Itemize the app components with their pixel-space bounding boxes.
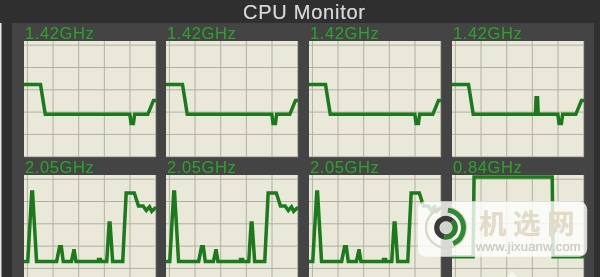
- staticText: 1.42GHz: [167, 24, 237, 42]
- button[interactable]: 2.05GHz: [24, 157, 156, 277]
- button[interactable]: 1.42GHz: [166, 23, 298, 157]
- staticText: 0.84GHz: [453, 158, 523, 176]
- staticText: 1.42GHz: [453, 24, 523, 42]
- staticText: 2.05GHz: [167, 158, 237, 176]
- staticText: 1.42GHz: [25, 24, 95, 42]
- staticText: 2.05GHz: [25, 158, 95, 176]
- button[interactable]: 1.42GHz: [452, 23, 584, 157]
- staticText: 机选网: [479, 202, 581, 242]
- button[interactable]: 0.84GHz: [452, 157, 584, 277]
- staticText: www.jixuanw.com: [476, 239, 581, 254]
- staticText: 1.42GHz: [310, 24, 380, 42]
- button[interactable]: 2.05GHz: [309, 157, 441, 277]
- staticText: 2.05GHz: [310, 158, 380, 176]
- button[interactable]: 1.42GHz: [24, 23, 156, 157]
- button[interactable]: 2.05GHz: [166, 157, 298, 277]
- staticText: CPU Monitor: [243, 1, 366, 23]
- button[interactable]: 1.42GHz: [309, 23, 441, 157]
